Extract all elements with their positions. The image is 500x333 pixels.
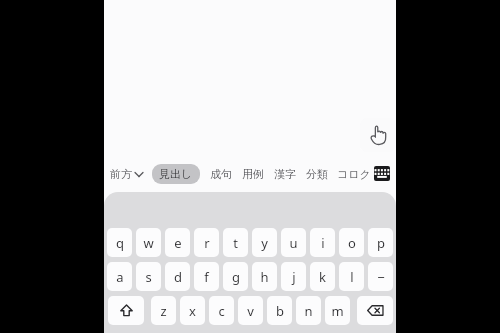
button[interactable]: h [252, 262, 277, 291]
button[interactable]: v [238, 296, 263, 325]
button[interactable]: f [194, 262, 219, 291]
button[interactable]: y [252, 228, 277, 257]
staticText: c [218, 302, 225, 320]
staticText: a [116, 268, 124, 286]
staticText: j [292, 268, 296, 286]
button[interactable]: r [194, 228, 219, 257]
staticText: e [174, 234, 182, 252]
button[interactable]: Backspace [357, 296, 393, 325]
button[interactable]: 見出し [152, 164, 200, 184]
staticText: 見出し [159, 167, 193, 181]
button[interactable]: コロク [334, 164, 374, 184]
staticText: h [260, 268, 269, 286]
staticText: l [350, 268, 354, 286]
staticText: x [189, 302, 196, 320]
staticText: 漢字 [274, 167, 296, 181]
button[interactable]: l [339, 262, 364, 291]
button[interactable]: t [223, 228, 248, 257]
staticText: u [289, 234, 298, 252]
button[interactable]: z [151, 296, 176, 325]
button[interactable]: p [368, 228, 393, 257]
staticText: 前方 [110, 167, 132, 181]
staticText: i [321, 234, 325, 252]
staticText: t [233, 234, 238, 252]
staticText: v [247, 302, 254, 320]
button[interactable]: − [368, 262, 393, 291]
staticText: r [204, 234, 210, 252]
button[interactable]: b [267, 296, 292, 325]
staticText: p [377, 234, 385, 252]
button[interactable]: o [339, 228, 364, 257]
staticText: n [304, 302, 313, 320]
button[interactable]: i [310, 228, 335, 257]
button[interactable]: 漢字 [270, 164, 300, 184]
button[interactable]: w [136, 228, 161, 257]
button[interactable]: g [223, 262, 248, 291]
staticText: z [160, 302, 167, 320]
button[interactable]: Keyboard [374, 166, 390, 181]
button[interactable]: s [136, 262, 161, 291]
staticText: g [232, 268, 240, 286]
button[interactable]: m [325, 296, 350, 325]
button[interactable]: u [281, 228, 306, 257]
staticText: k [319, 268, 326, 286]
button[interactable]: n [296, 296, 321, 325]
staticText: b [276, 302, 284, 320]
button[interactable]: d [165, 262, 190, 291]
staticText: 成句 [210, 167, 232, 181]
button[interactable]: Shift [108, 296, 144, 325]
staticText: s [145, 268, 152, 286]
button[interactable]: c [209, 296, 234, 325]
staticText: コロク [337, 167, 371, 181]
button[interactable]: Handwriting input [360, 118, 396, 152]
staticText: 用例 [242, 167, 264, 181]
staticText: m [331, 302, 344, 320]
staticText: q [116, 234, 124, 252]
staticText: d [174, 268, 182, 286]
button[interactable]: 分類 [302, 164, 332, 184]
button[interactable]: j [281, 262, 306, 291]
button[interactable]: k [310, 262, 335, 291]
button[interactable]: q [107, 228, 132, 257]
button[interactable]: 用例 [238, 164, 268, 184]
button[interactable]: a [107, 262, 132, 291]
staticText: − [377, 268, 385, 286]
staticText: y [261, 234, 268, 252]
staticText: w [143, 234, 154, 252]
button[interactable]: x [180, 296, 205, 325]
button[interactable]: 成句 [206, 164, 236, 184]
staticText: f [204, 268, 209, 286]
staticText: o [348, 234, 356, 252]
button[interactable]: 前方 [110, 167, 143, 181]
staticText: 分類 [306, 167, 328, 181]
button[interactable]: e [165, 228, 190, 257]
